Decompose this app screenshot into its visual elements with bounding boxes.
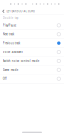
button[interactable]: Previous track — [0, 39, 64, 48]
staticText: Game mode — [3, 68, 19, 72]
button[interactable]: Back — [2, 9, 5, 13]
staticText: Double tap — [3, 16, 19, 20]
button[interactable]: Switch noise control mode — [0, 57, 64, 66]
staticText: Play/Pause — [3, 24, 17, 27]
button[interactable]: Voice Assistant — [0, 48, 64, 57]
staticText: Previous track — [3, 41, 20, 45]
button[interactable]: Next track — [0, 30, 64, 39]
button[interactable]: Game mode — [0, 66, 64, 74]
staticText: Next track — [3, 32, 14, 36]
button[interactable]: Play/Pause — [0, 21, 64, 30]
button[interactable]: Off — [0, 74, 64, 83]
staticText: Voice Assistant — [3, 50, 23, 54]
staticText: Off — [3, 77, 7, 80]
staticText: LEFT EARBUD ACTIONS — [6, 9, 34, 13]
staticText: Switch noise control mode — [3, 59, 40, 63]
